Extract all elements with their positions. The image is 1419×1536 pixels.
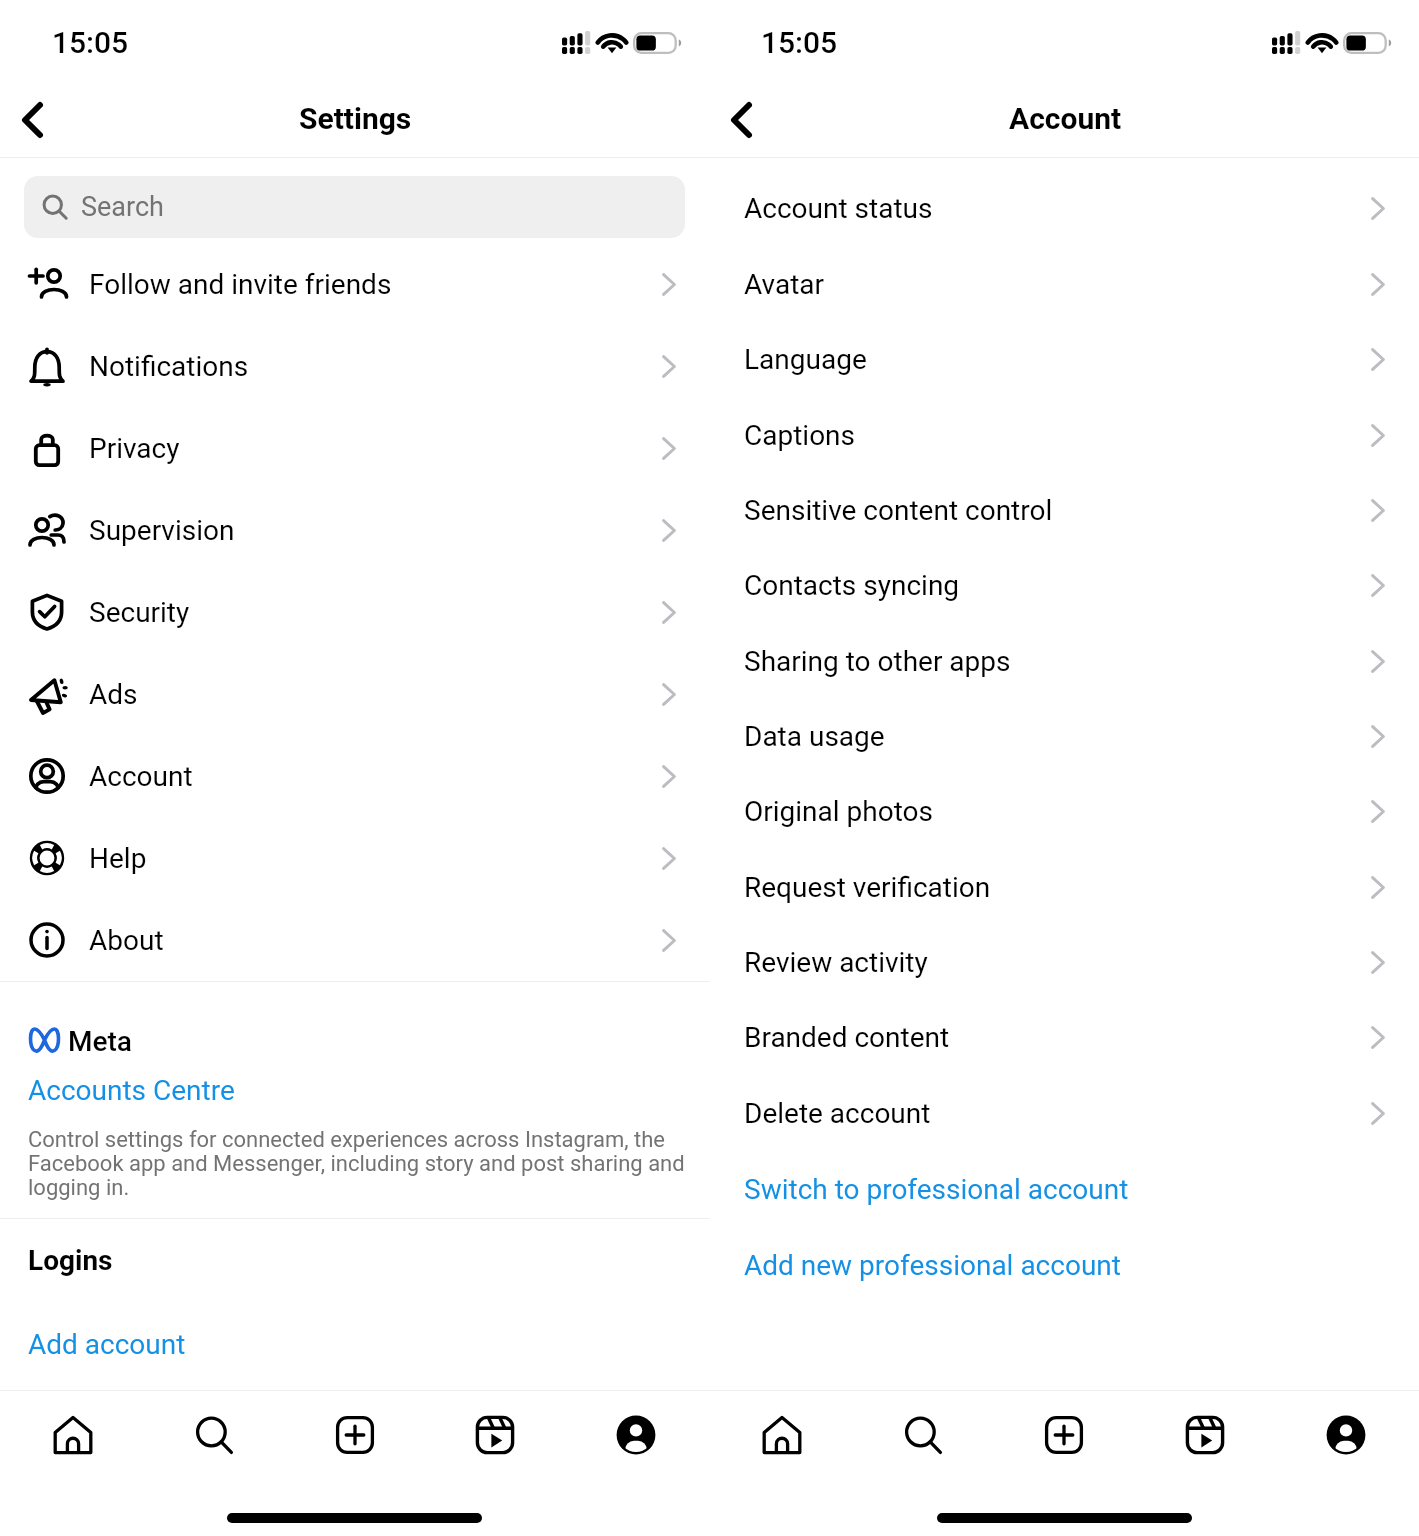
staticText: 15:05 <box>761 25 838 60</box>
staticText: Account <box>1009 101 1122 136</box>
button[interactable]: Add new professional account <box>709 1227 1419 1303</box>
button[interactable]: Supervision <box>0 489 709 571</box>
staticText: Language <box>744 343 867 376</box>
staticText: Search <box>81 191 164 223</box>
staticText: Add account <box>28 1328 186 1361</box>
staticText: Review activity <box>744 946 928 979</box>
button[interactable]: Request verification <box>709 849 1419 925</box>
button[interactable]: Delete account <box>709 1075 1419 1151</box>
button[interactable]: Review activity <box>709 925 1419 1000</box>
button[interactable]: Follow and invite friends <box>0 243 709 325</box>
button[interactable]: Security <box>0 571 709 653</box>
staticText: Privacy <box>89 432 180 465</box>
staticText: About <box>89 924 164 957</box>
staticText: Add new professional account <box>744 1249 1121 1282</box>
button[interactable]: Home <box>740 1391 824 1479</box>
staticText: Notifications <box>89 350 249 383</box>
button[interactable]: Data usage <box>709 699 1419 774</box>
staticText: Sharing to other apps <box>744 645 1011 678</box>
staticText: Security <box>89 596 190 629</box>
staticText: Follow and invite friends <box>89 268 392 301</box>
button[interactable]: Create <box>1022 1391 1106 1479</box>
staticText: Help <box>89 842 147 875</box>
staticText: Original photos <box>744 795 933 828</box>
button[interactable]: Profile <box>1304 1391 1388 1479</box>
staticText: Avatar <box>744 268 825 301</box>
staticText: Settings <box>299 101 412 136</box>
staticText: Captions <box>744 419 856 452</box>
button[interactable]: Home <box>31 1391 115 1479</box>
staticText: Account status <box>744 192 933 225</box>
button[interactable]: About <box>0 899 709 981</box>
button[interactable]: Back <box>3 91 61 149</box>
button[interactable]: Account status <box>709 170 1419 246</box>
button[interactable]: Captions <box>709 397 1419 473</box>
staticText: Control settings for connected experienc… <box>28 1127 687 1200</box>
button[interactable]: Original photos <box>709 774 1419 849</box>
staticText: Accounts Centre <box>28 1074 235 1107</box>
button[interactable]: Profile <box>594 1391 678 1479</box>
button[interactable]: Search <box>24 176 685 238</box>
button[interactable]: Contacts syncing <box>709 548 1419 623</box>
staticText: Data usage <box>744 720 885 753</box>
staticText: Branded content <box>744 1021 950 1054</box>
button[interactable]: Privacy <box>0 407 709 489</box>
button[interactable]: Notifications <box>0 325 709 407</box>
button[interactable]: Accounts Centre <box>0 1073 709 1107</box>
staticText: Contacts syncing <box>744 569 960 602</box>
staticText: Logins <box>28 1244 113 1277</box>
button[interactable]: Search <box>881 1391 965 1479</box>
button[interactable]: Switch to professional account <box>709 1151 1419 1227</box>
staticText: Delete account <box>744 1097 931 1130</box>
button[interactable]: Create <box>313 1391 397 1479</box>
button[interactable]: Help <box>0 817 709 899</box>
button[interactable]: Avatar <box>709 246 1419 322</box>
staticText: 15:05 <box>52 25 129 60</box>
button[interactable]: Language <box>709 322 1419 397</box>
staticText: Supervision <box>89 514 235 547</box>
staticText: Account <box>89 760 193 793</box>
button[interactable]: Add account <box>0 1327 709 1361</box>
staticText: Ads <box>89 678 138 711</box>
staticText: Sensitive content control <box>744 494 1053 527</box>
staticText: Request verification <box>744 871 991 904</box>
button[interactable]: Ads <box>0 653 709 735</box>
button[interactable]: Reels <box>1163 1391 1247 1479</box>
button[interactable]: Account <box>0 735 709 817</box>
button[interactable]: Branded content <box>709 1000 1419 1075</box>
staticText: Meta <box>68 1025 133 1053</box>
button[interactable]: Sensitive content control <box>709 473 1419 548</box>
button[interactable]: Sharing to other apps <box>709 623 1419 699</box>
button[interactable]: Back <box>712 91 770 149</box>
staticText: Switch to professional account <box>744 1173 1129 1206</box>
button[interactable]: Reels <box>453 1391 537 1479</box>
button[interactable]: Search <box>172 1391 256 1479</box>
